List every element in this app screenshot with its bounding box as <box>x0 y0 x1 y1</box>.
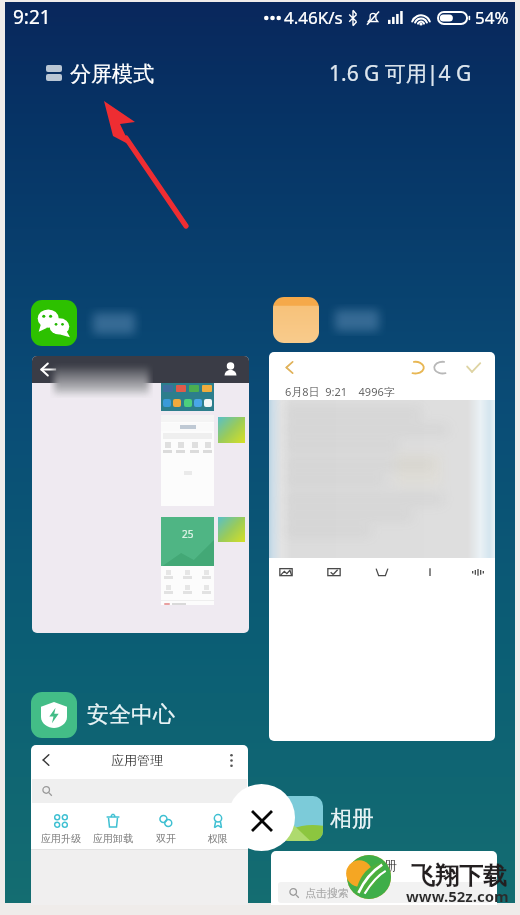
button[interactable]: 应用卸载 <box>89 813 137 845</box>
button[interactable]: 25 <box>32 356 249 633</box>
staticText: 权限 <box>208 832 228 845</box>
button[interactable] <box>273 297 386 343</box>
staticText: 应用管理 <box>111 752 163 768</box>
staticText: 安全中心 <box>87 701 175 729</box>
staticText: 25 <box>182 527 194 541</box>
staticText: 6月8日 9:21 4996字 <box>285 384 395 399</box>
button[interactable]: 安全中心 <box>31 692 175 738</box>
button[interactable]: Close all tasks <box>228 784 295 851</box>
button[interactable]: 相册 <box>278 796 374 841</box>
staticText: 相册 <box>371 857 397 873</box>
staticText: 应用卸载 <box>93 832 133 845</box>
button[interactable]: 双开 <box>142 813 190 845</box>
button[interactable]: 权限 <box>194 813 242 845</box>
staticText: 分屏模式 <box>70 61 154 85</box>
staticText: 飞翔下载 <box>411 861 507 891</box>
button[interactable]: 应用升级 <box>37 813 85 845</box>
button[interactable]: 相册 <box>271 851 497 905</box>
staticText: 应用升级 <box>41 832 81 845</box>
staticText: 9:21 <box>13 4 51 30</box>
button[interactable] <box>31 300 142 346</box>
staticText: 双开 <box>156 832 176 845</box>
staticText: 4.46K/s <box>284 6 343 29</box>
staticText: 点击搜索 <box>305 886 349 900</box>
staticText: 1.6 G 可用|4 G <box>329 59 472 88</box>
staticText: 相册 <box>330 805 374 833</box>
button[interactable]: 分屏模式 <box>46 58 154 88</box>
staticText: 54% <box>475 6 509 29</box>
button[interactable]: 6月8日 9:21 4996字 <box>269 352 495 741</box>
button[interactable]: 应用管理 <box>31 745 248 905</box>
staticText: www.52z.com <box>406 886 509 906</box>
